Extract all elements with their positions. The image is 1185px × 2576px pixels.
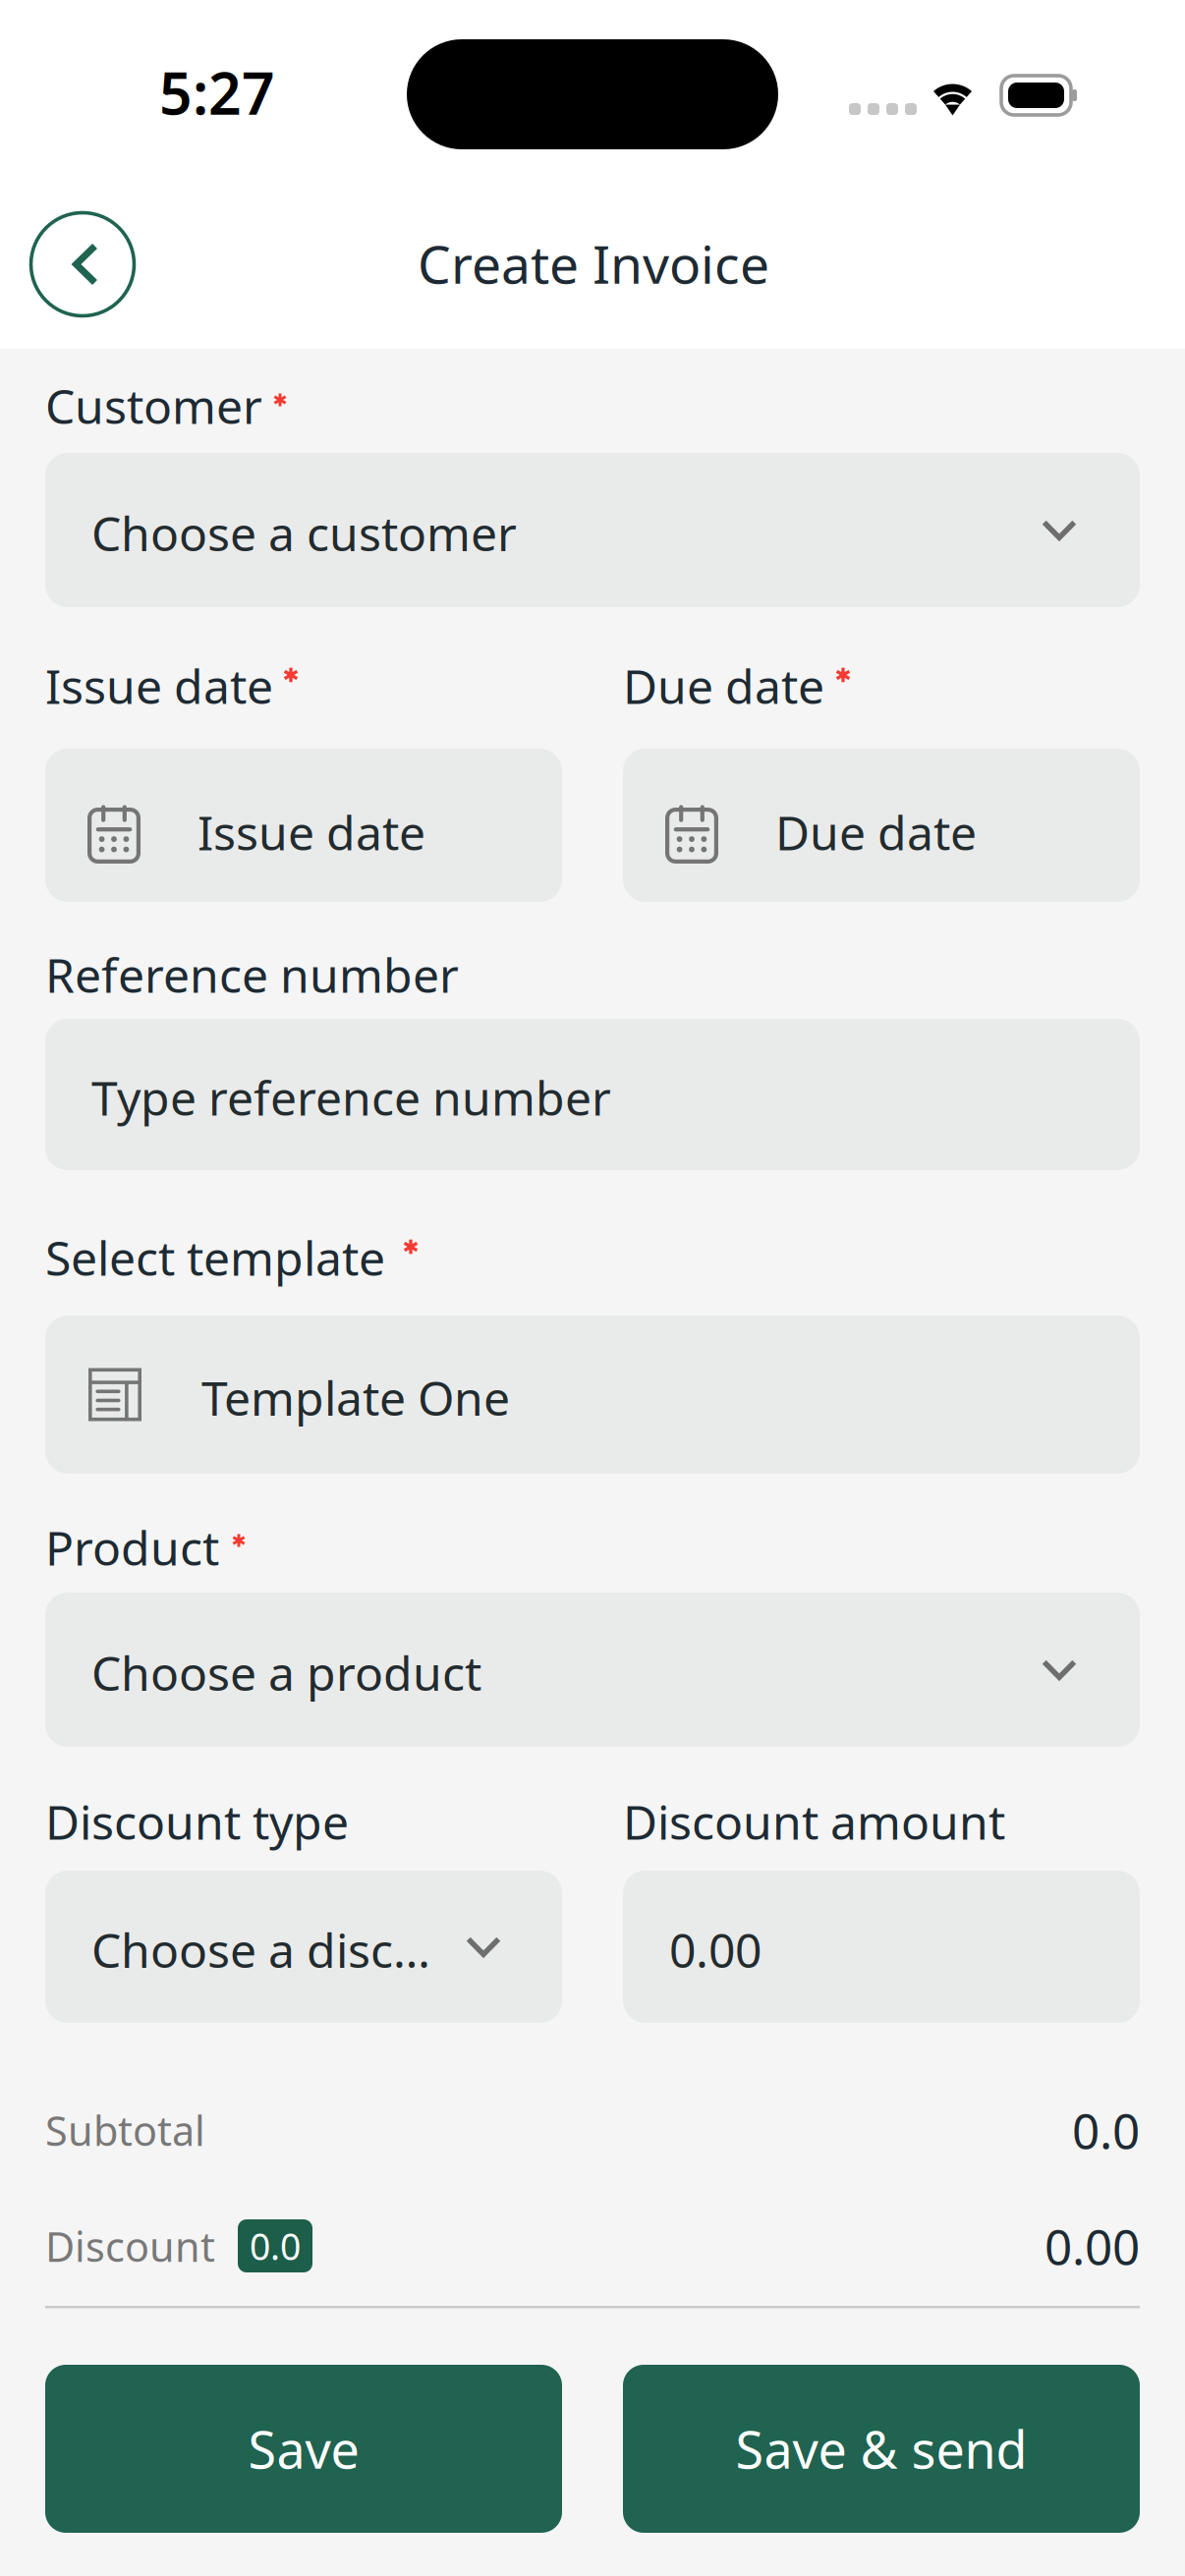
staticText: Issue date xyxy=(45,654,273,717)
button[interactable]: Choose a product xyxy=(45,1593,1140,1747)
staticText: 5:27 xyxy=(159,54,275,131)
button[interactable]: Due date xyxy=(623,749,1140,902)
staticText: Create Invoice xyxy=(418,229,769,298)
staticText: Discount amount xyxy=(623,1790,1005,1853)
staticText: Product xyxy=(45,1516,219,1579)
staticText: Discount xyxy=(45,2219,215,2273)
staticText: 0.00 xyxy=(669,1918,762,1981)
staticText: Discount type xyxy=(45,1790,349,1853)
staticText: Choose a customer xyxy=(91,502,517,564)
staticText: Due date xyxy=(775,801,977,863)
staticText: Subtotal xyxy=(45,2103,205,2157)
staticText: Reference number xyxy=(45,943,459,1006)
button[interactable]: Save xyxy=(45,2365,562,2533)
staticText: Due date xyxy=(623,654,824,717)
button[interactable]: Back xyxy=(29,211,136,317)
button[interactable]: Choose a disc… xyxy=(45,1871,562,2023)
staticText: Save xyxy=(248,2415,359,2483)
staticText: 0.00 xyxy=(1044,2214,1140,2278)
button[interactable]: Issue date xyxy=(45,749,562,902)
staticText: Choose a disc… xyxy=(91,1918,430,1981)
staticText: Choose a product xyxy=(91,1641,481,1704)
staticText: 0.0 xyxy=(250,2222,301,2270)
button[interactable]: Type reference number xyxy=(45,1019,1140,1170)
button[interactable]: Template One xyxy=(45,1316,1140,1474)
staticText: Type reference number xyxy=(91,1066,611,1129)
staticText: Select template xyxy=(45,1226,385,1289)
staticText: Template One xyxy=(201,1366,510,1429)
button[interactable]: Choose a customer xyxy=(45,453,1140,607)
button[interactable]: Save & send xyxy=(623,2365,1140,2533)
staticText: Customer xyxy=(45,374,262,437)
staticText: Issue date xyxy=(197,801,425,863)
staticText: Save & send xyxy=(735,2415,1027,2483)
staticText: 0.0 xyxy=(1072,2098,1140,2162)
